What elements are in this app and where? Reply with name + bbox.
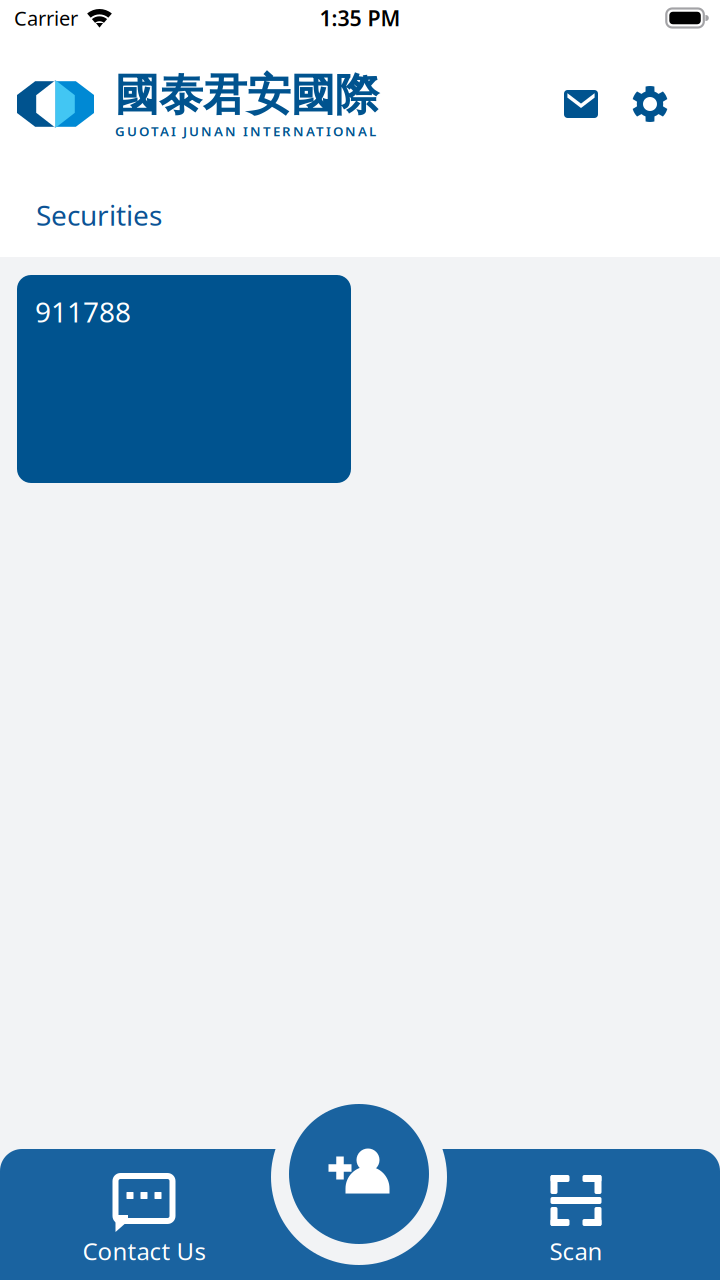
button[interactable]: Messages bbox=[555, 78, 607, 130]
staticText: 911788 bbox=[35, 293, 131, 330]
staticText: Scan bbox=[549, 1235, 602, 1267]
staticText: Contact Us bbox=[82, 1235, 205, 1267]
staticText: 國泰君安國際 bbox=[115, 68, 379, 122]
button[interactable]: Settings bbox=[624, 78, 676, 130]
staticText: 1:35 PM bbox=[319, 4, 400, 32]
button[interactable]: Scan bbox=[432, 1149, 720, 1280]
staticText: Securities bbox=[36, 196, 162, 234]
staticText: Carrier bbox=[14, 5, 78, 31]
button[interactable]: 911788 bbox=[17, 275, 351, 483]
staticText: GUOTAI JUNAN INTERNATIONAL bbox=[115, 122, 376, 140]
button[interactable]: Contact Us bbox=[0, 1149, 288, 1280]
button[interactable]: Add client bbox=[289, 1104, 429, 1244]
